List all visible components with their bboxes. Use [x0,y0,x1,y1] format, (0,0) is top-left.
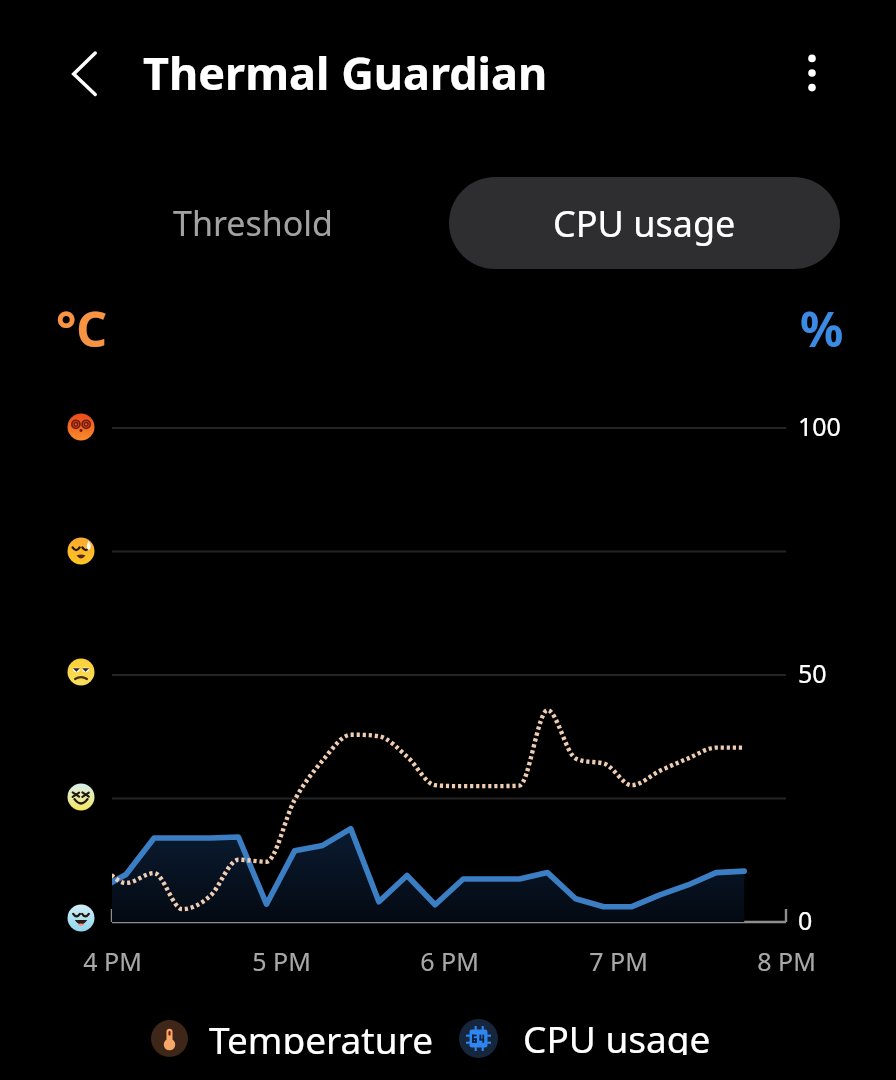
button[interactable]: Temperature [151,1018,433,1058]
staticText: Threshold [173,200,334,246]
button[interactable]: Back [54,44,114,104]
staticText: 5 PM [252,944,311,978]
staticText: CPU usage [523,1013,711,1055]
staticText: CPU usage [553,199,736,248]
staticText: 8 PM [757,944,816,978]
staticText: 0 [798,903,813,937]
button[interactable]: CPU usage [459,1017,711,1059]
staticText: % [800,296,844,350]
staticText: Thermal Guardian [143,42,548,103]
button[interactable]: CPU usage [449,177,840,269]
staticText: 6 PM [420,944,479,978]
button[interactable]: More options [783,44,841,102]
staticText: °C [56,296,108,350]
staticText: 50 [798,656,827,690]
staticText: 4 PM [83,944,142,978]
staticText: Temperature [209,1014,433,1054]
button[interactable]: Threshold [58,177,449,269]
staticText: 7 PM [589,944,648,978]
staticText: 100 [798,409,841,443]
